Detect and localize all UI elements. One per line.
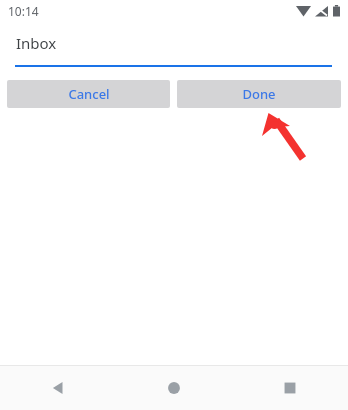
staticText: Inbox bbox=[16, 33, 57, 53]
staticText: 10:14 bbox=[8, 3, 39, 19]
button[interactable]: Home bbox=[116, 366, 232, 410]
staticText: Done bbox=[242, 85, 276, 103]
button[interactable]: Done bbox=[177, 80, 341, 108]
staticText: Cancel bbox=[68, 85, 110, 103]
button[interactable]: Inbox bbox=[0, 22, 348, 67]
button[interactable]: Recent apps bbox=[232, 366, 348, 410]
button[interactable]: Cancel bbox=[7, 80, 170, 108]
button[interactable]: Back bbox=[0, 366, 116, 410]
